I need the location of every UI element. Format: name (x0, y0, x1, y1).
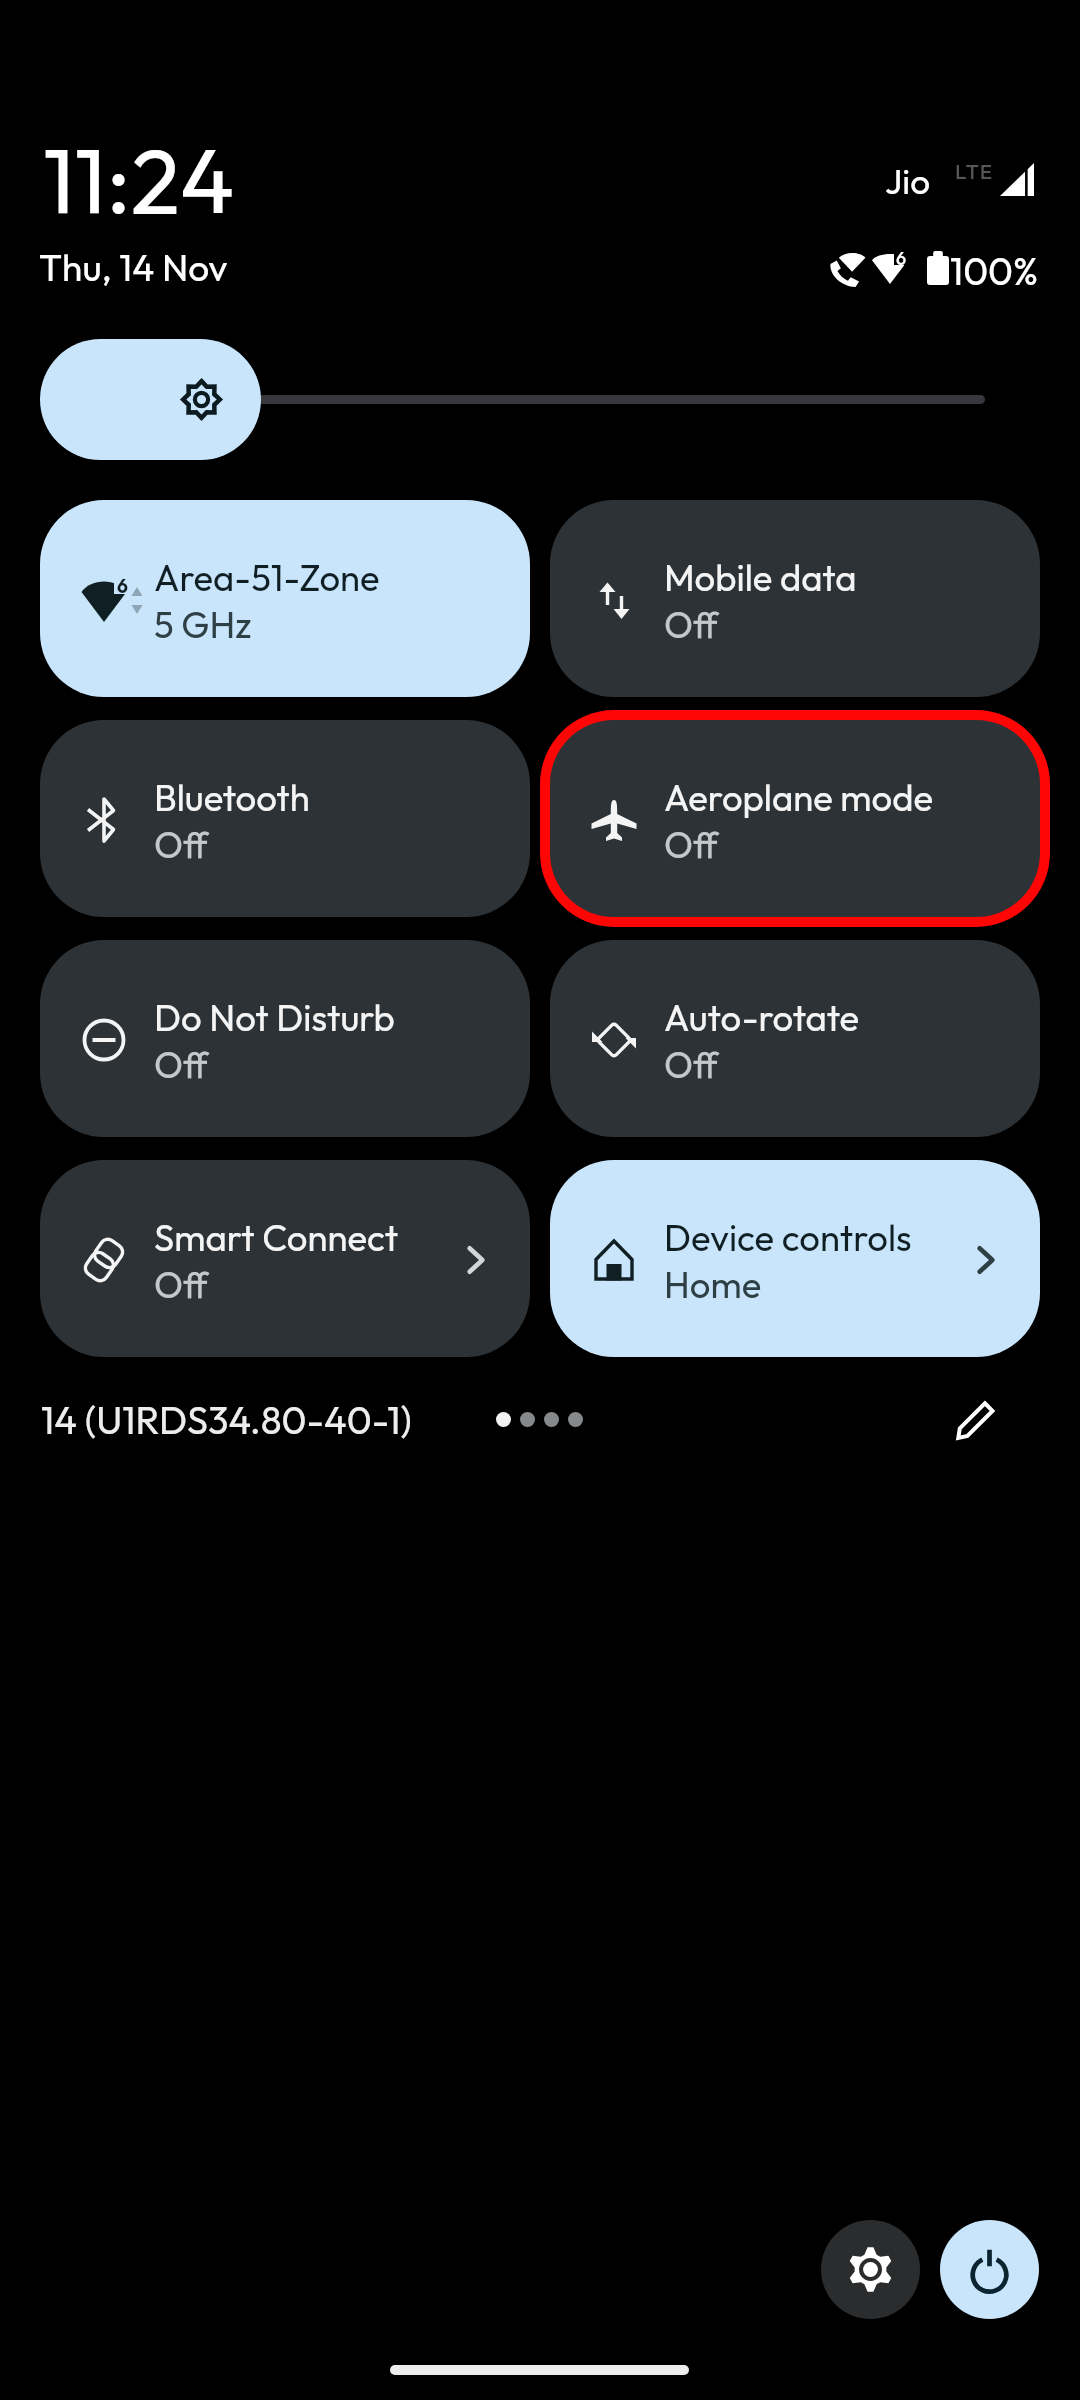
button[interactable]: Settings (821, 2220, 920, 2319)
staticText: Off (154, 1261, 208, 1307)
staticText: Off (154, 821, 208, 867)
staticText: Mobile data (664, 554, 857, 600)
staticText: Off (664, 1041, 718, 1087)
staticText: Aeroplane mode (664, 774, 934, 820)
staticText: Off (664, 821, 718, 867)
staticText: Smart Connect (154, 1214, 399, 1260)
button[interactable]: Mobile data (550, 500, 1040, 697)
button[interactable]: Power (940, 2220, 1039, 2319)
button[interactable]: Do Not Disturb (40, 940, 530, 1137)
button[interactable]: Device controls (550, 1160, 1040, 1357)
button[interactable]: Auto-rotate (550, 940, 1040, 1137)
staticText: Do Not Disturb (154, 994, 395, 1040)
button[interactable]: Bluetooth (40, 720, 530, 917)
staticText: Off (664, 601, 718, 647)
staticText: Thu, 14 Nov (39, 244, 228, 291)
staticText: 11:24 (43, 122, 235, 237)
staticText: 6 (117, 574, 128, 598)
staticText: Off (154, 1041, 208, 1087)
button[interactable]: Smart Connect (40, 1160, 530, 1357)
button[interactable]: Edit tiles (927, 1372, 1023, 1468)
staticText: Bluetooth (154, 774, 310, 820)
staticText: Auto-rotate (664, 994, 860, 1040)
staticText: Device controls (664, 1214, 912, 1260)
staticText: Area-51-Zone (154, 554, 380, 600)
staticText: 6 (896, 247, 907, 270)
staticText: 14 (U1RDS34.80-40-1) (41, 1396, 412, 1444)
staticText: Home (664, 1261, 762, 1307)
staticText: 100% (950, 247, 1039, 295)
button[interactable]: Brightness (40, 339, 261, 460)
button[interactable]: 6 (40, 500, 530, 697)
staticText: LTE (955, 158, 994, 184)
staticText: Jio (885, 159, 930, 203)
button[interactable]: Aeroplane mode (550, 720, 1040, 917)
staticText: 5 GHz (154, 601, 252, 647)
